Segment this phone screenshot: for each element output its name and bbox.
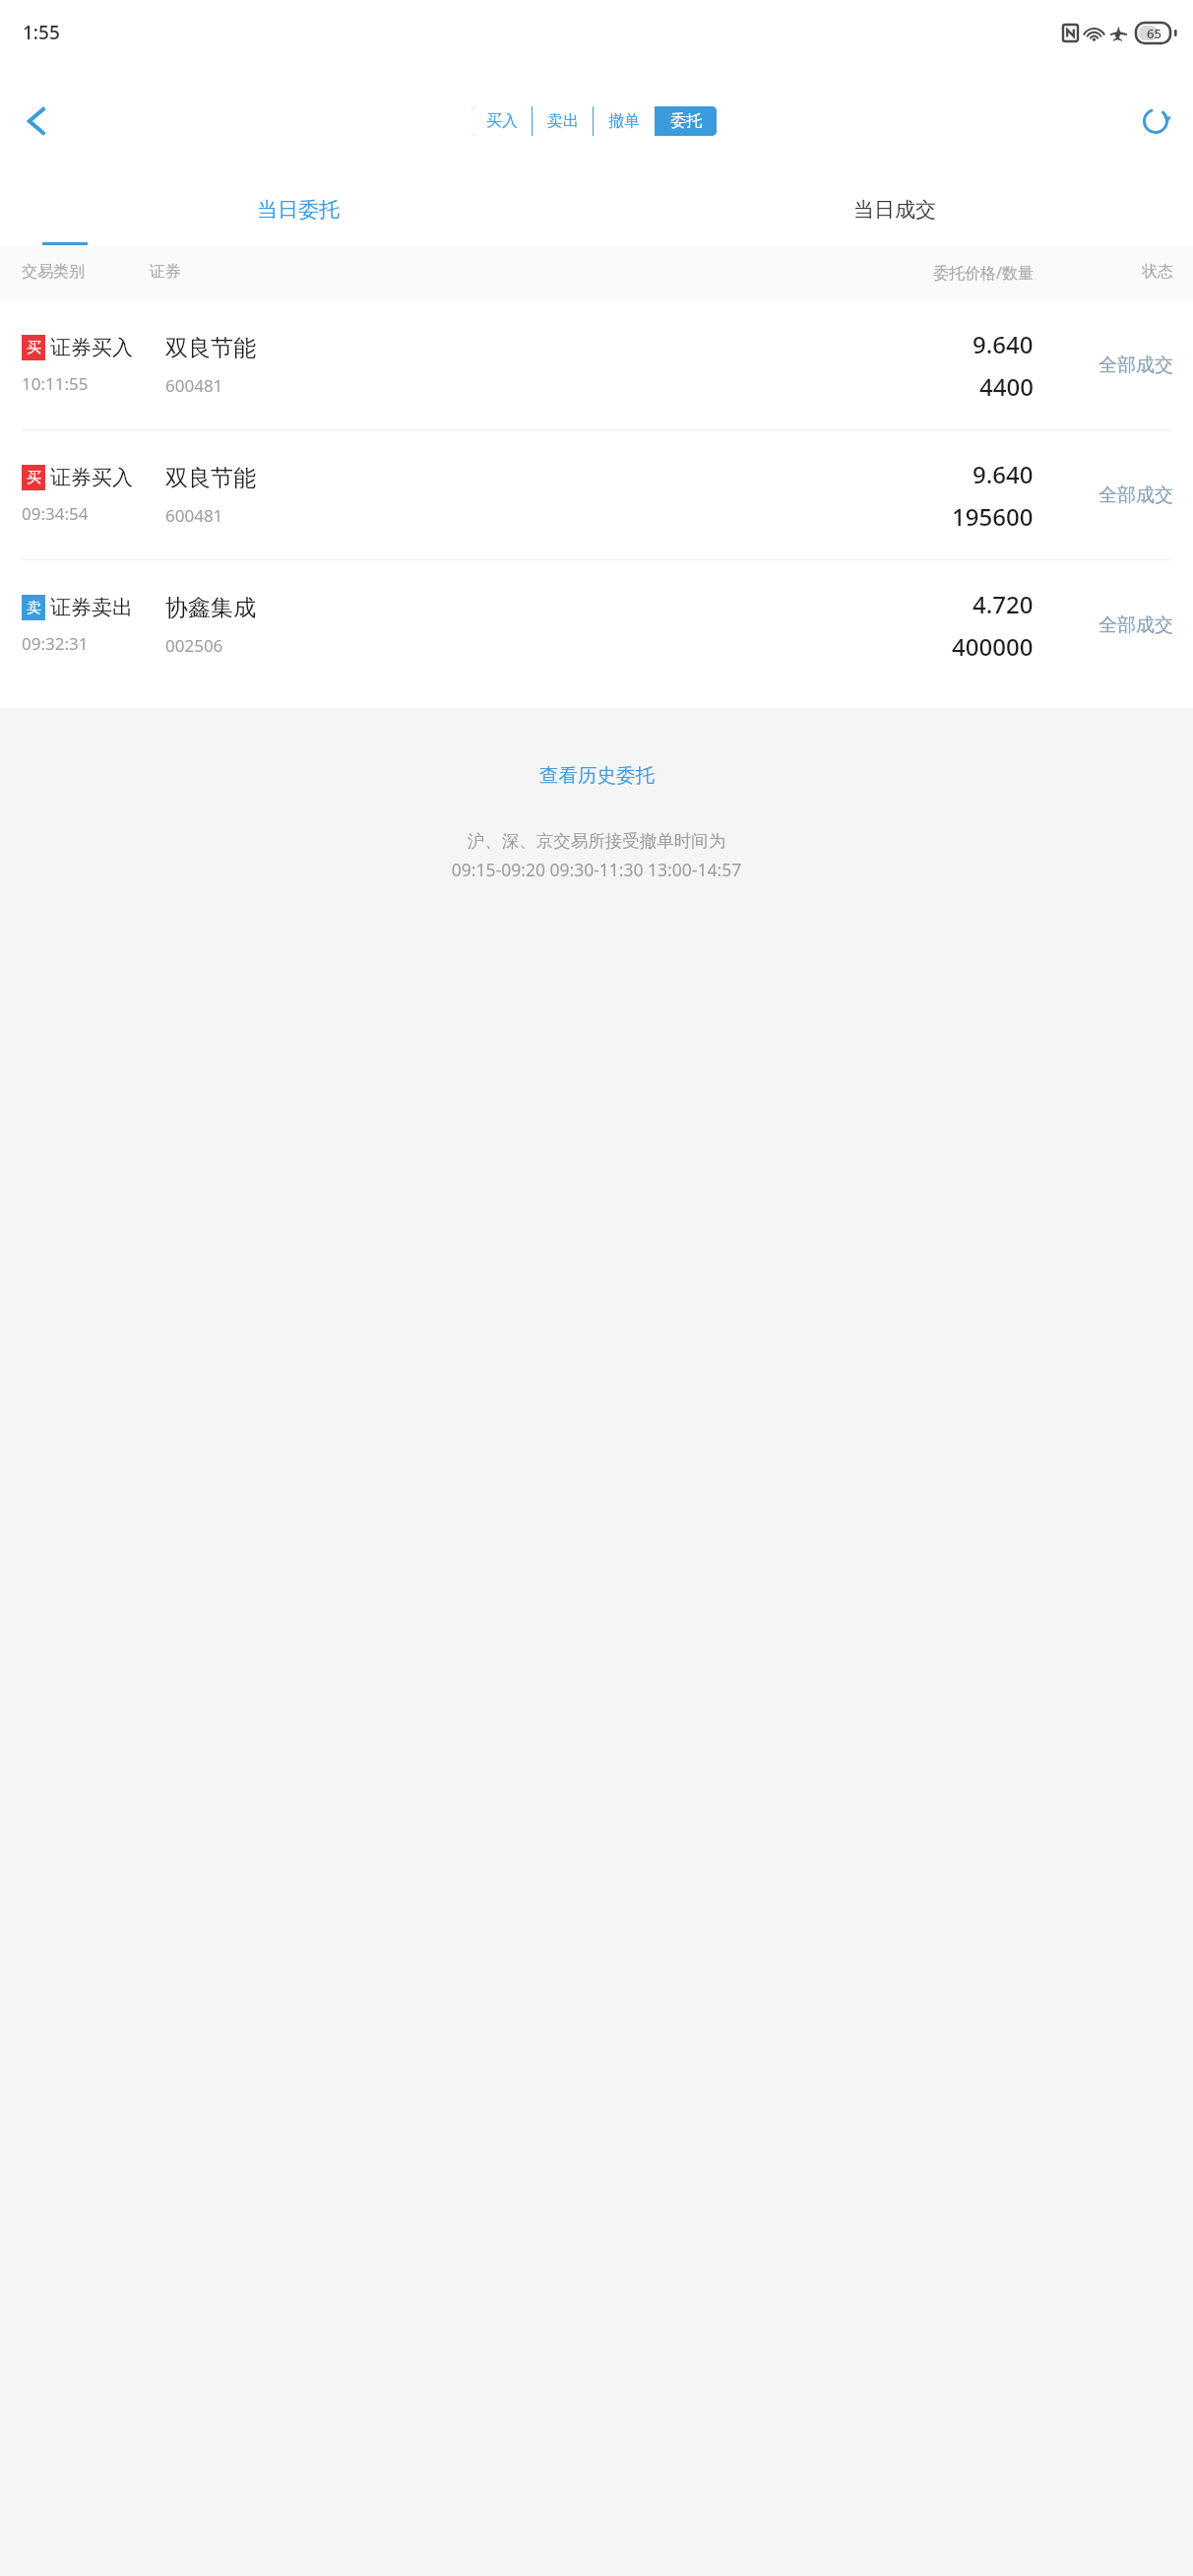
staticText: 600481 [165, 374, 223, 397]
staticText: 买入 [486, 111, 518, 131]
button[interactable]: 委托 [656, 106, 717, 136]
staticText: 全部成交 [1099, 483, 1173, 507]
staticText: 4.720 [973, 588, 1034, 620]
staticText: 195600 [952, 500, 1034, 533]
staticText: 买 [27, 339, 41, 357]
button[interactable]: 当日委托 [0, 176, 596, 242]
staticText: 双良节能 [165, 334, 256, 362]
staticText: 证券 [150, 262, 850, 282]
staticText: 查看历史委托 [539, 763, 655, 788]
staticText: 09:34:54 [22, 502, 89, 525]
button[interactable]: Refresh [1118, 84, 1193, 159]
staticText: 9.640 [973, 328, 1034, 360]
staticText: 002506 [165, 634, 223, 657]
button[interactable]: Back [0, 84, 75, 159]
staticText: 4400 [979, 370, 1034, 403]
staticText: 全部成交 [1099, 354, 1173, 377]
button[interactable]: 买 [0, 300, 1193, 429]
staticText: 状态 [1085, 262, 1173, 282]
staticText: 证券卖出 [50, 595, 133, 620]
staticText: 协鑫集成 [165, 594, 256, 622]
staticText: 撤单 [608, 111, 640, 131]
staticText: 9.640 [973, 458, 1034, 490]
staticText: 证券买入 [50, 335, 133, 360]
staticText: 委托价格/数量 [850, 262, 1034, 284]
staticText: 当日委托 [257, 197, 340, 223]
button[interactable]: 买 [0, 430, 1193, 559]
staticText: 400000 [952, 630, 1034, 663]
staticText: 600481 [165, 504, 223, 527]
staticText: 证券买入 [50, 465, 133, 490]
button[interactable]: 卖出 [533, 106, 593, 136]
staticText: 全部成交 [1099, 613, 1173, 637]
staticText: 09:15-09:20 09:30-11:30 13:00-14:57 [0, 858, 1193, 881]
staticText: 沪、深、京交易所接受撤单时间为 [0, 830, 1193, 852]
button[interactable]: 买入 [471, 106, 532, 136]
staticText: 卖出 [547, 111, 579, 131]
staticText: 买 [27, 469, 41, 487]
button[interactable]: 查看历史委托 [0, 755, 1193, 795]
staticText: 卖 [27, 599, 41, 617]
button[interactable]: 当日成交 [596, 176, 1193, 242]
staticText: 65 [1147, 25, 1162, 42]
button[interactable]: 卖 [0, 560, 1193, 689]
staticText: 交易类别 [22, 262, 150, 282]
staticText: 当日成交 [853, 197, 936, 223]
staticText: 委托 [670, 111, 702, 131]
staticText: 10:11:55 [22, 372, 89, 395]
staticText: 双良节能 [165, 464, 256, 492]
button[interactable]: 撤单 [594, 106, 655, 136]
staticText: 09:32:31 [22, 632, 89, 655]
staticText: 1:55 [23, 20, 60, 45]
